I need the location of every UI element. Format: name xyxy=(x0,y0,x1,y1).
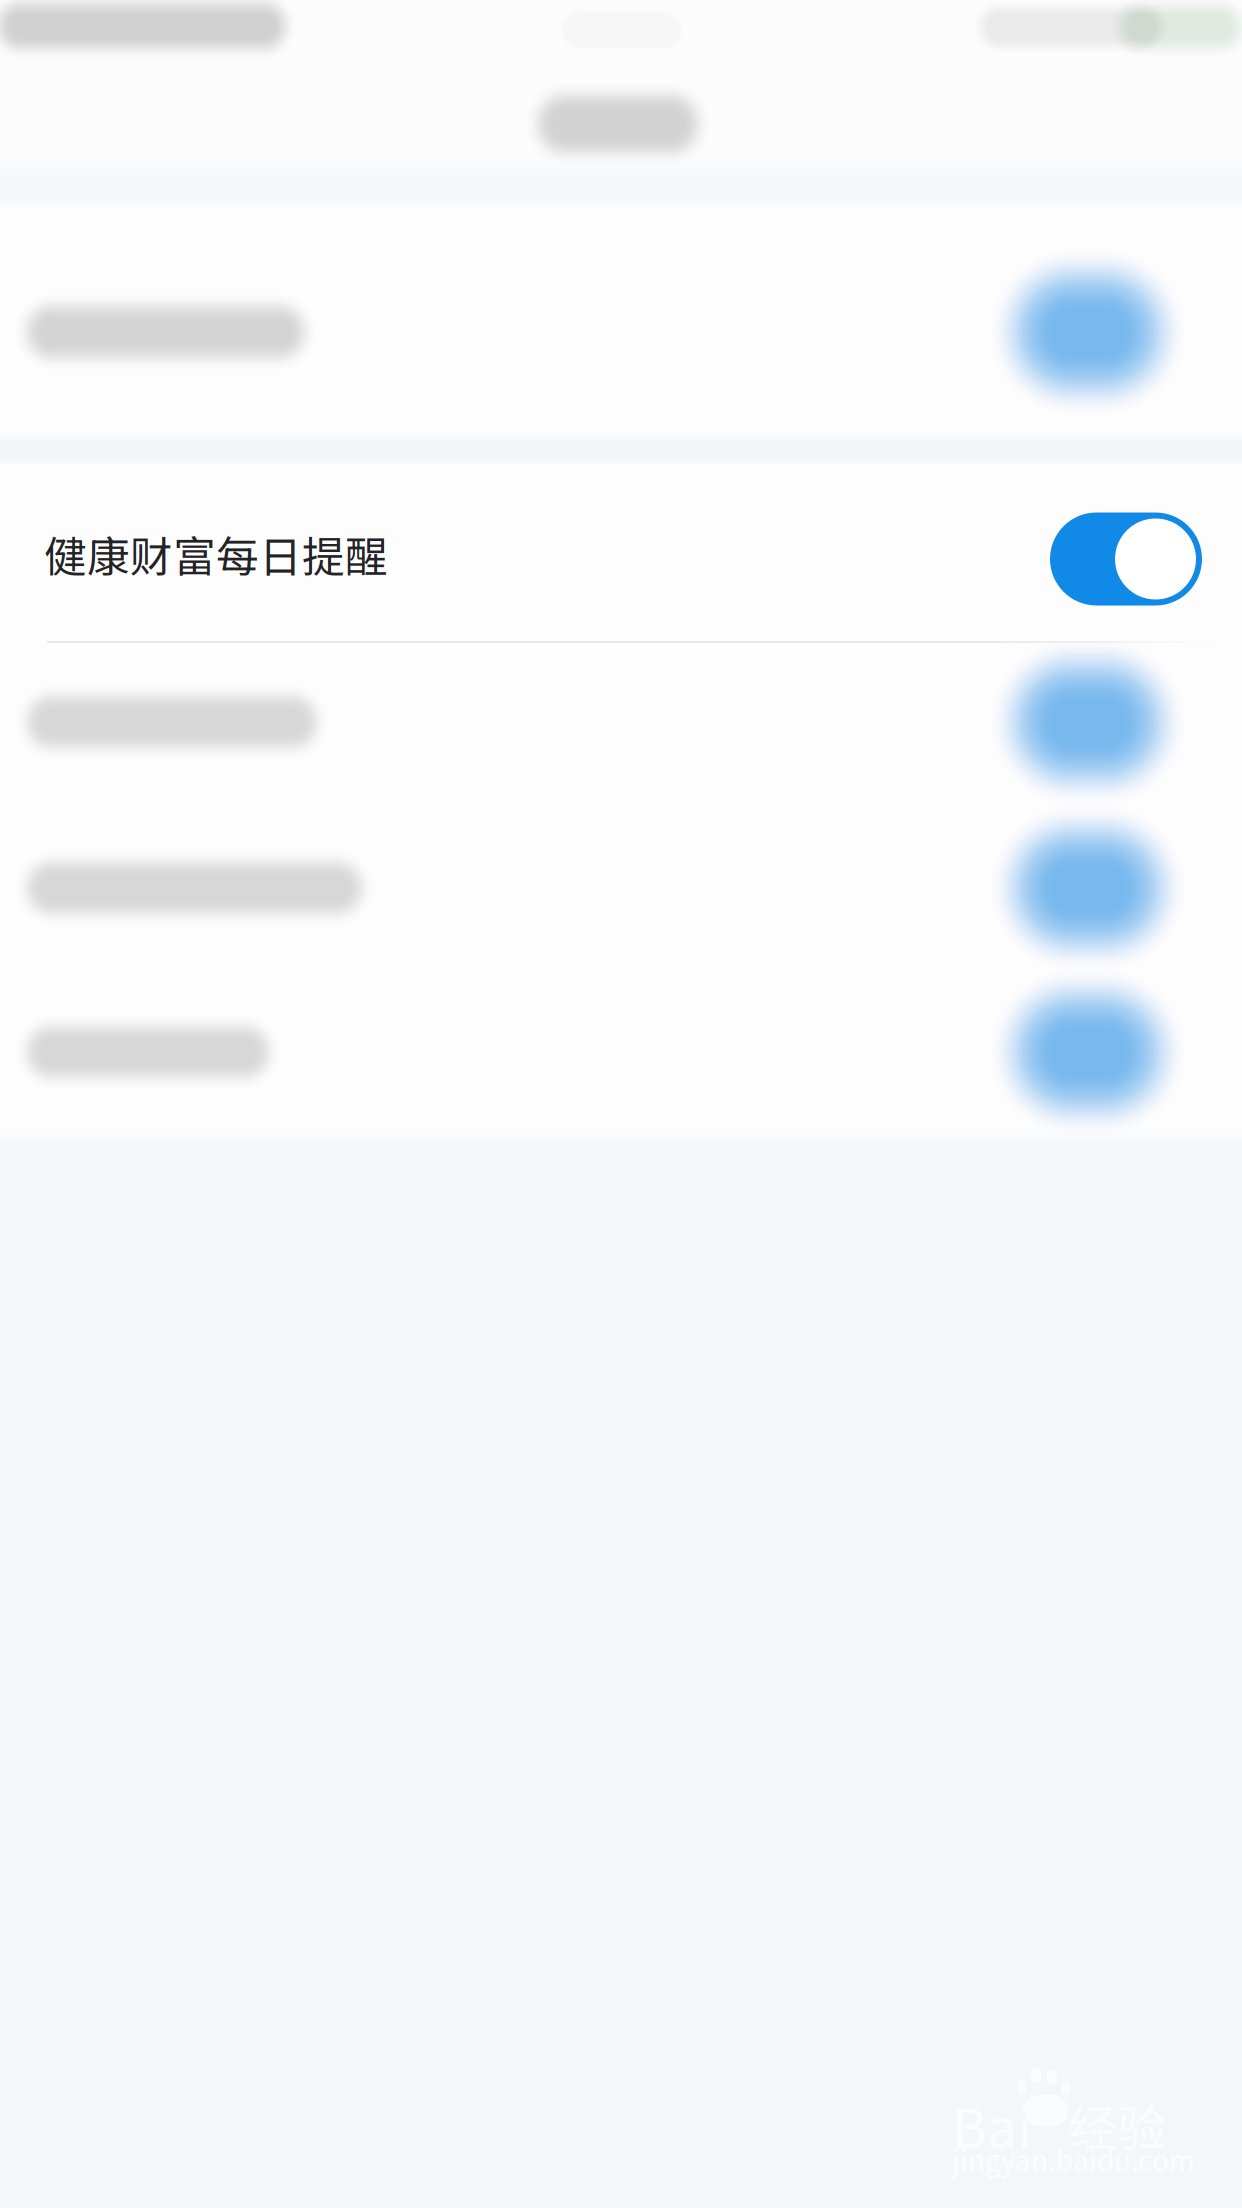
button[interactable]: 健康财富每日提醒 xyxy=(0,476,1242,642)
staticText: 健康财富每日提醒 xyxy=(44,523,388,585)
